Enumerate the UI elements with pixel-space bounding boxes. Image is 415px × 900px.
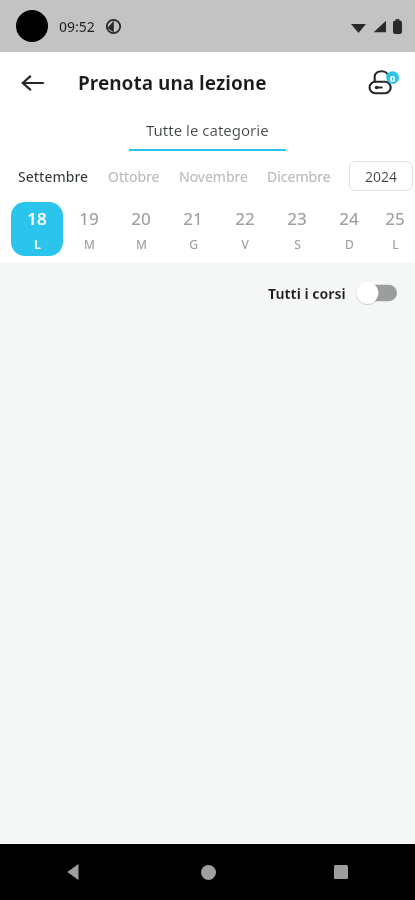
button[interactable]: Novembre [179,167,248,186]
button[interactable]: Home [188,852,228,892]
staticText: 23 [287,207,307,230]
staticText: Tutte le categorie [146,120,269,140]
button[interactable]: 21 [167,202,219,256]
staticText: S [294,236,301,252]
button[interactable]: Dicembre [267,167,331,186]
button[interactable]: Back [10,61,54,105]
staticText: 19 [79,207,99,230]
staticText: Novembre [179,167,248,186]
staticText: 0 [390,72,396,84]
staticText: Settembre [18,167,89,186]
button[interactable]: Settembre [18,167,89,186]
button[interactable]: 18 [11,202,63,256]
button[interactable]: Cart [359,59,407,107]
staticText: L [392,236,399,252]
button[interactable]: 25 [375,202,415,256]
button[interactable]: Tutte le categorie [129,120,286,151]
staticText: Prenota una lezione [78,70,267,96]
staticText: 09:52 [59,17,95,36]
staticText: 25 [385,207,405,230]
staticText: 24 [339,207,359,230]
button[interactable]: Tutti i corsi [264,278,401,308]
staticText: 2024 [365,167,398,186]
button[interactable]: 20 [115,202,167,256]
staticText: Ottobre [108,167,160,186]
staticText: 21 [183,207,203,230]
button[interactable]: 24 [323,202,375,256]
staticText: M [84,236,95,252]
button[interactable]: 23 [271,202,323,256]
staticText: 20 [131,207,151,230]
staticText: 18 [27,207,47,230]
staticText: Dicembre [267,167,331,186]
staticText: L [34,236,41,252]
staticText: Tutti i corsi [268,284,346,303]
staticText: M [136,236,147,252]
button[interactable]: 2024 [349,161,413,191]
button[interactable]: 22 [219,202,271,256]
button[interactable]: Ottobre [108,167,160,186]
staticText: G [189,236,198,252]
button[interactable]: 19 [63,202,115,256]
button[interactable]: Recent apps [321,852,361,892]
button[interactable]: Back [54,852,94,892]
staticText: D [345,236,354,252]
staticText: V [241,236,249,252]
staticText: 22 [235,207,255,230]
